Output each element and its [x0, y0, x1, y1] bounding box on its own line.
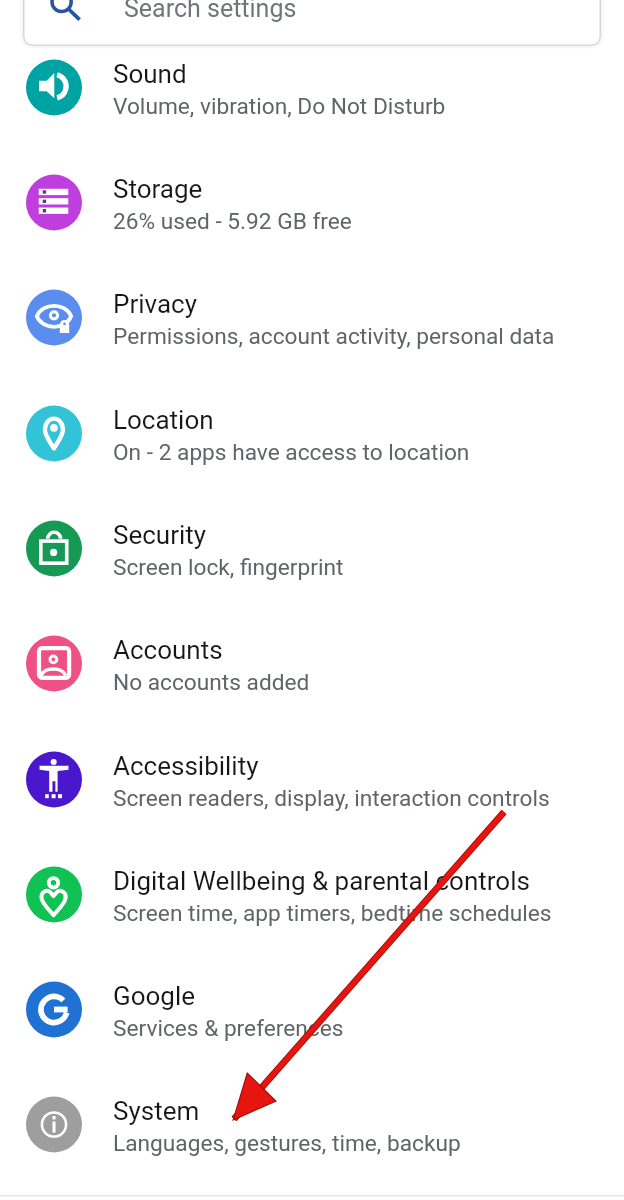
staticText: System [113, 1096, 200, 1126]
staticText: Sound [113, 59, 187, 89]
staticText: Services & preferences [113, 1015, 344, 1042]
staticText: Storage [113, 174, 203, 204]
button[interactable]: Security [0, 491, 624, 606]
staticText: Privacy [113, 289, 197, 319]
staticText: Security [113, 520, 207, 550]
button[interactable]: Digital Wellbeing & parental controls [0, 837, 624, 952]
button[interactable]: System [0, 1067, 624, 1182]
staticText: No accounts added [113, 669, 310, 696]
staticText: Search settings [124, 0, 297, 23]
staticText: Permissions, account activity, personal … [113, 323, 555, 350]
staticText: Screen lock, fingerprint [113, 554, 344, 581]
button[interactable]: Google [0, 952, 624, 1067]
staticText: Location [113, 405, 214, 435]
button[interactable]: Accounts [0, 606, 624, 721]
staticText: Google [113, 981, 196, 1011]
button[interactable]: Location [0, 376, 624, 491]
button[interactable]: Sound [0, 30, 624, 145]
staticText: Volume, vibration, Do Not Disturb [113, 93, 446, 120]
staticText: Accessibility [113, 751, 259, 781]
button[interactable]: Privacy [0, 260, 624, 375]
staticText: 26% used - 5.92 GB free [113, 208, 352, 235]
staticText: Screen readers, display, interaction con… [113, 785, 550, 812]
staticText: Screen time, app timers, bedtime schedul… [113, 900, 552, 927]
staticText: Digital Wellbeing & parental controls [113, 866, 530, 896]
staticText: On - 2 apps have access to location [113, 439, 470, 466]
staticText: Languages, gestures, time, backup [113, 1130, 461, 1157]
button[interactable]: Accessibility [0, 722, 624, 837]
button[interactable]: Storage [0, 145, 624, 260]
button[interactable] [24, 0, 600, 46]
staticText: Accounts [113, 635, 223, 665]
